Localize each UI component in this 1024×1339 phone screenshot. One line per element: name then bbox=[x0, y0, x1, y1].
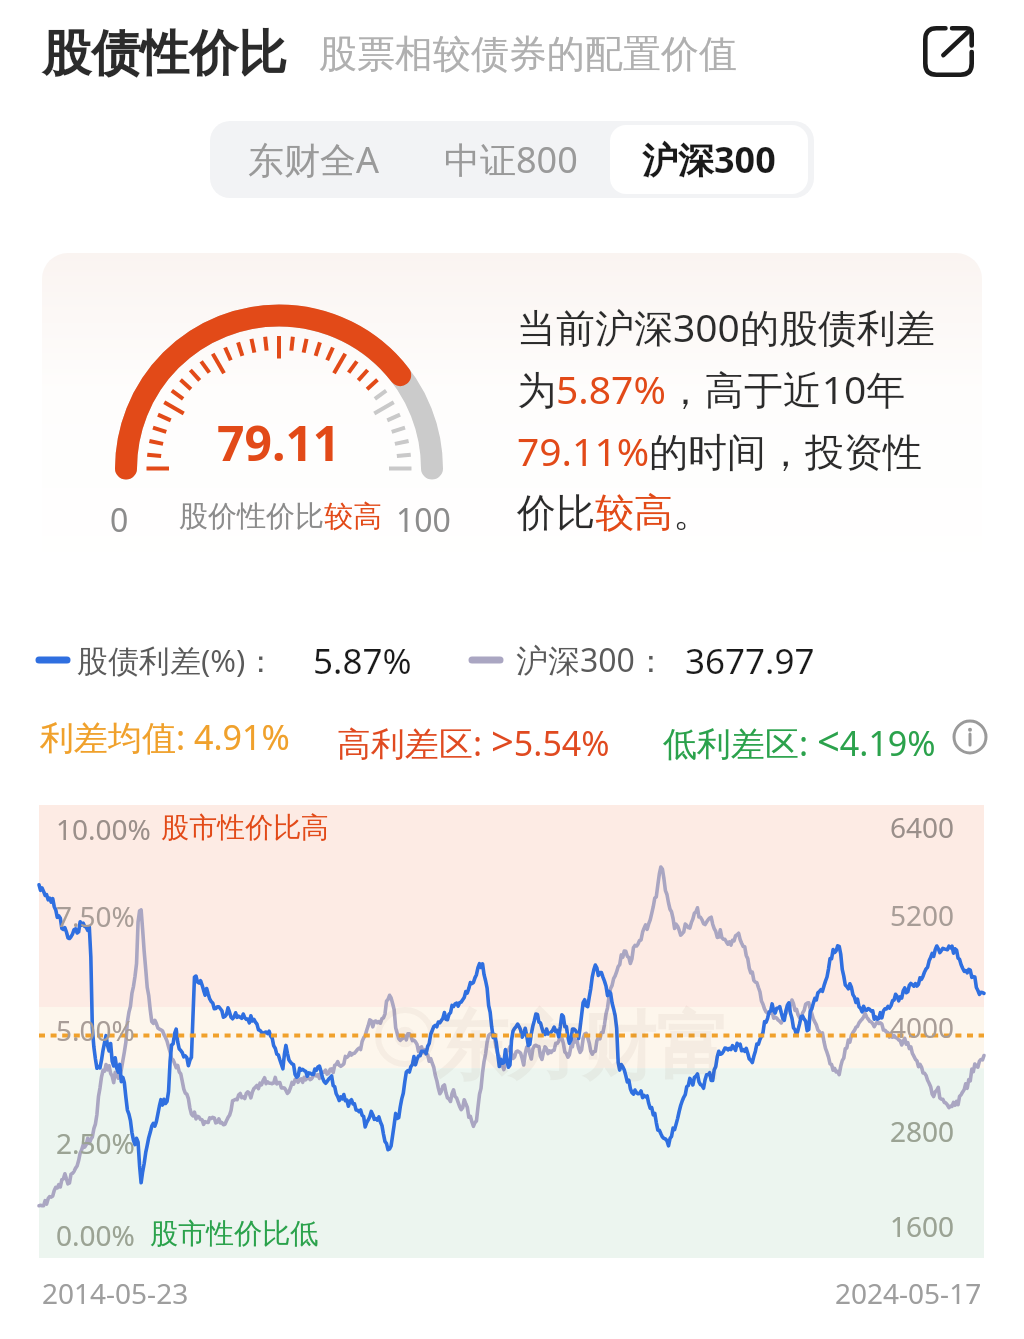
staticText: 东方财富 bbox=[434, 1001, 730, 1094]
staticText: 低利差区: <4.19% bbox=[663, 713, 936, 761]
staticText: 东财全A bbox=[248, 135, 380, 184]
staticText: 股市性价比高 bbox=[161, 810, 329, 845]
button[interactable]: 东财全A bbox=[216, 125, 412, 194]
staticText: 0 bbox=[110, 498, 129, 542]
staticText: 79.11 bbox=[217, 410, 341, 475]
staticText: 1600 bbox=[890, 1207, 955, 1245]
staticText: 股债利差(%)： bbox=[77, 639, 277, 681]
button[interactable]: 沪深300 bbox=[610, 125, 808, 194]
staticText: 股市性价比低 bbox=[150, 1216, 318, 1251]
button[interactable]: 中证800 bbox=[412, 125, 610, 194]
staticText: 股债性价比 bbox=[42, 23, 287, 85]
staticText: 4000 bbox=[890, 1008, 955, 1046]
staticText: 3677.97 bbox=[685, 637, 815, 683]
button[interactable]: Share bbox=[905, 11, 991, 97]
staticText: 6400 bbox=[890, 808, 955, 846]
staticText: 2024-05-17 bbox=[835, 1274, 982, 1312]
staticText: 股价性价比较高 bbox=[179, 498, 382, 535]
staticText: 5.00% bbox=[56, 1011, 135, 1049]
staticText: 0.00% bbox=[56, 1216, 135, 1254]
staticText: 股票相较债券的配置价值 bbox=[319, 30, 737, 78]
staticText: 5.87% bbox=[313, 637, 412, 683]
staticText: 5200 bbox=[890, 896, 955, 934]
staticText: 当前沪深300的股债利差 为5.87%，高于近10年 79.11%的时间，投资性… bbox=[517, 300, 935, 537]
staticText: 2800 bbox=[890, 1112, 955, 1150]
staticText: 2.50% bbox=[56, 1124, 135, 1162]
staticText: 7.50% bbox=[56, 897, 135, 935]
staticText: 沪深300： bbox=[516, 638, 667, 682]
staticText: 高利差区: >5.54% bbox=[337, 713, 610, 761]
staticText: 10.00% bbox=[56, 810, 151, 848]
staticText: 沪深300 bbox=[642, 135, 776, 184]
staticText: 利差均值: 4.91% bbox=[40, 714, 290, 760]
staticText: 中证800 bbox=[444, 135, 578, 184]
staticText: 100 bbox=[396, 498, 451, 542]
staticText: 2014-05-23 bbox=[42, 1274, 189, 1312]
